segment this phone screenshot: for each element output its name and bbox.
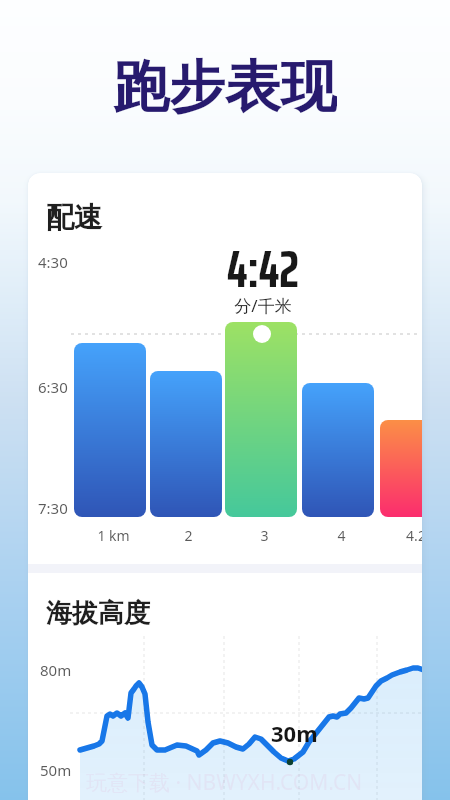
- button[interactable]: 配速: [28, 173, 422, 564]
- staticText: 1 km: [97, 526, 130, 545]
- staticText: 50m: [40, 760, 72, 780]
- staticText: 跑步表现: [113, 52, 337, 116]
- staticText: 7:30: [38, 498, 68, 518]
- staticText: 2: [184, 526, 193, 545]
- staticText: 4.2: [406, 526, 422, 545]
- button[interactable]: 海拔高度: [28, 573, 422, 800]
- staticText: 6:30: [38, 377, 68, 397]
- staticText: 80m: [40, 660, 72, 680]
- staticText: 4:30: [38, 252, 68, 272]
- staticText: 玩意下载 · NBWYXH.COM.CN: [86, 768, 363, 797]
- staticText: 3: [260, 526, 269, 545]
- staticText: 海拔高度: [46, 597, 150, 630]
- staticText: 30m: [271, 718, 318, 748]
- staticText: 配速: [46, 200, 102, 235]
- staticText: 4:42: [227, 228, 299, 310]
- staticText: 4: [337, 526, 346, 545]
- staticText: 分/千米: [234, 294, 292, 317]
